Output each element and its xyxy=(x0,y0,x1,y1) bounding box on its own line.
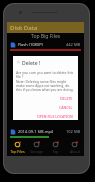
staticText: Delete ! xyxy=(22,60,41,67)
staticText: 442 MB xyxy=(66,42,81,47)
staticText: DELETE xyxy=(60,96,73,101)
staticText: Are you sure you want to delete this fil… xyxy=(16,70,75,79)
staticText: Disk Data xyxy=(10,24,38,32)
staticText: Note: Deleting some files might make som… xyxy=(16,79,75,92)
staticText: 2014-09-1 6f8.mp4 xyxy=(18,129,66,134)
button[interactable]: Top Extensions xyxy=(46,138,65,156)
button[interactable]: CANCEL xyxy=(58,103,74,112)
button[interactable]: Top Files xyxy=(7,138,27,156)
button[interactable]: Flash (1080P) An...tube.mp4 xyxy=(7,40,84,51)
button[interactable]: 2014-09-1 6f8.mp4 xyxy=(7,127,84,138)
button[interactable]: DELETE xyxy=(59,94,74,103)
staticText: Top Extensions xyxy=(46,149,65,154)
staticText: About xyxy=(70,149,80,154)
staticText: Top Files xyxy=(10,149,25,154)
staticText: 102 MB xyxy=(66,129,81,134)
staticText: Top Big Files xyxy=(31,33,61,40)
button[interactable]: About xyxy=(65,138,84,156)
staticText: Storage xyxy=(30,149,43,154)
staticText: OPEN FILE LOCATION xyxy=(37,114,73,119)
button[interactable]: Storage xyxy=(27,138,46,156)
button[interactable]: OPEN FILE LOCATION xyxy=(36,112,74,121)
staticText: CANCEL xyxy=(59,105,73,110)
staticText: Flash (1080P) An...tube.mp4 xyxy=(18,42,66,47)
